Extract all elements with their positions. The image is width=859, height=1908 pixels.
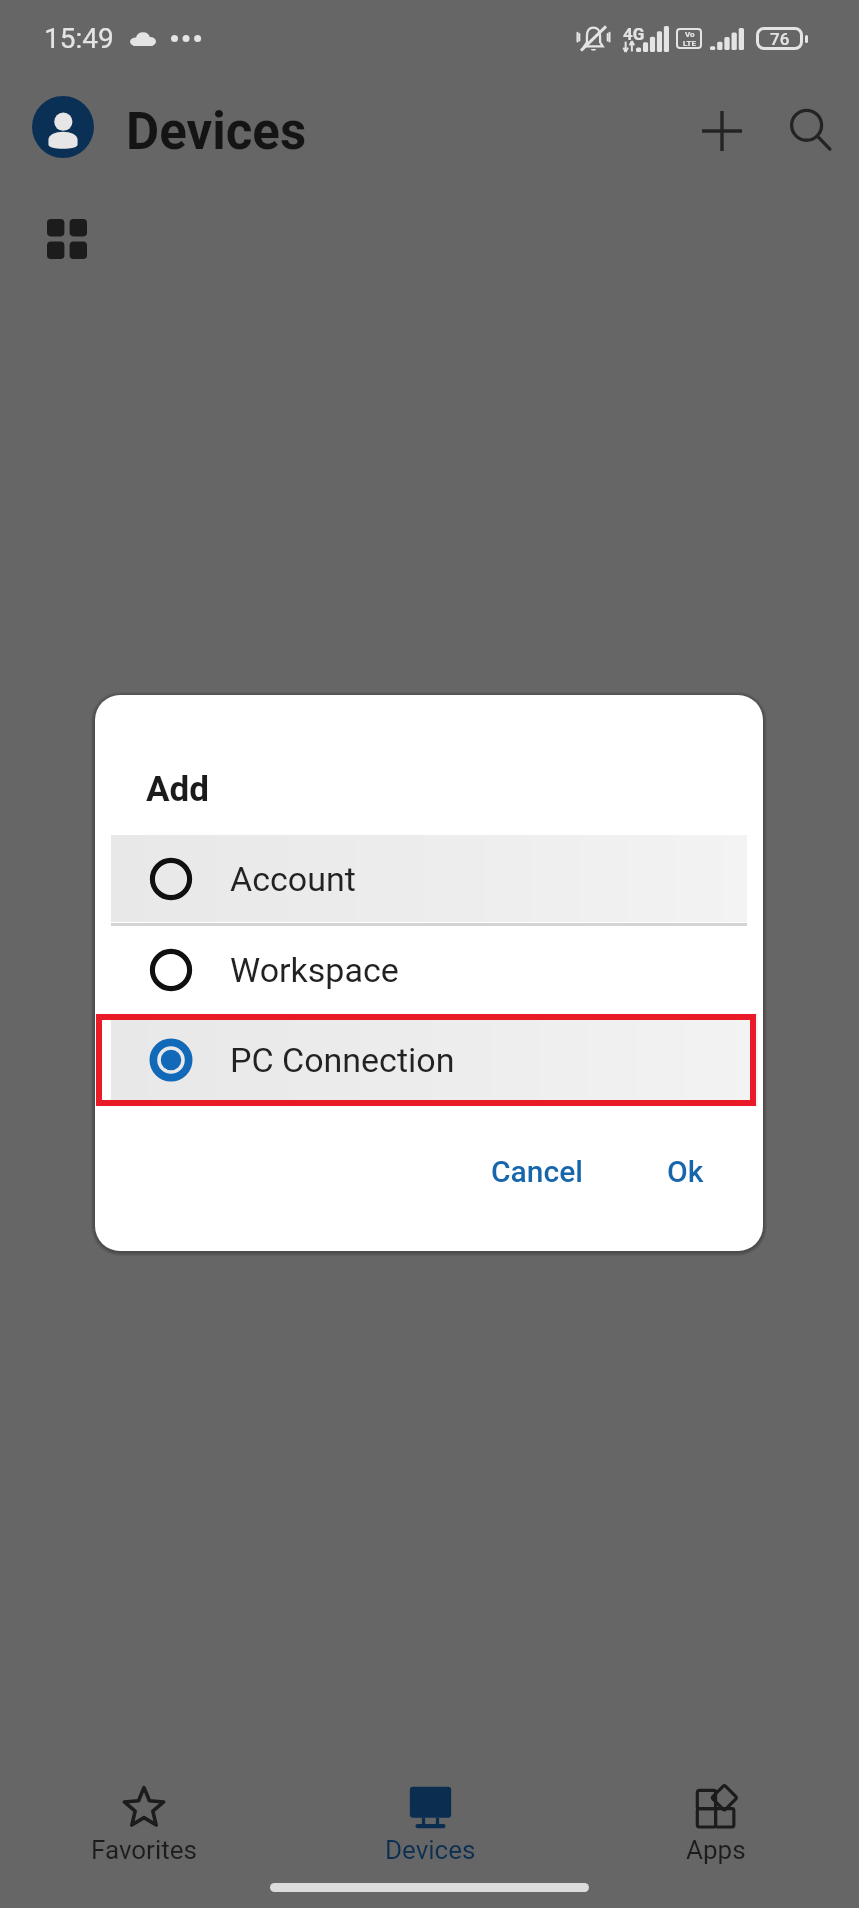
button[interactable]: Search [775, 95, 846, 166]
button[interactable]: Grid view [47, 219, 87, 259]
staticText: 15:49 [44, 22, 114, 55]
staticText: Account [230, 859, 356, 899]
staticText: Ok [667, 1154, 704, 1189]
staticText: Cancel [491, 1154, 584, 1189]
staticText: 4G [623, 24, 645, 44]
button[interactable]: Account [111, 835, 747, 922]
button[interactable]: Ok [660, 1142, 711, 1201]
button[interactable]: Apps [573, 1779, 859, 1875]
staticText: PC Connection [230, 1040, 455, 1080]
button[interactable]: Profile [32, 96, 94, 158]
staticText: 76 [770, 29, 790, 49]
staticText: Vo [685, 30, 695, 39]
button[interactable]: Add [686, 95, 757, 166]
staticText: Devices [126, 102, 307, 162]
button[interactable]: Favorites [0, 1779, 287, 1875]
button[interactable]: Devices [287, 1779, 573, 1875]
staticText: Devices [385, 1835, 476, 1865]
button[interactable]: Cancel [484, 1142, 591, 1201]
staticText: Favorites [91, 1835, 197, 1865]
staticText: Apps [686, 1835, 746, 1865]
staticText: Workspace [230, 950, 399, 990]
staticText: Add [146, 769, 210, 810]
button[interactable]: PC Connection [111, 1014, 758, 1106]
button[interactable]: Workspace [111, 926, 747, 1013]
staticText: LTE [683, 39, 696, 48]
